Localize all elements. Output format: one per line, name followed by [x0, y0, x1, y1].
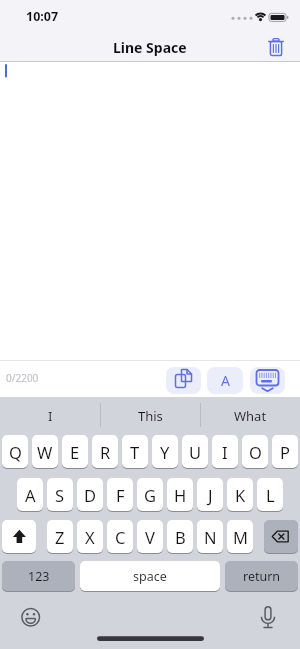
staticText: E: [70, 441, 80, 463]
staticText: W: [37, 441, 53, 463]
button[interactable]: C: [107, 520, 133, 553]
button[interactable]: What: [200, 399, 300, 433]
staticText: L: [266, 484, 275, 506]
staticText: O: [249, 441, 262, 463]
staticText: Z: [55, 526, 65, 548]
button[interactable]: I: [0, 399, 100, 433]
staticText: This: [138, 407, 163, 425]
staticText: S: [55, 484, 65, 506]
button[interactable]: [264, 520, 298, 553]
staticText: N: [204, 526, 217, 548]
staticText: T: [130, 441, 140, 463]
button[interactable]: I: [212, 435, 238, 468]
button[interactable]: [18, 604, 44, 630]
staticText: 123: [28, 568, 50, 585]
staticText: C: [115, 526, 126, 548]
button[interactable]: O: [242, 435, 268, 468]
staticText: B: [175, 526, 186, 548]
staticText: V: [145, 526, 155, 548]
button[interactable]: Y: [152, 435, 178, 468]
button[interactable]: G: [137, 478, 163, 511]
button[interactable]: Z: [47, 520, 73, 553]
staticText: F: [116, 484, 125, 506]
button[interactable]: U: [182, 435, 208, 468]
button[interactable]: Q: [2, 435, 28, 468]
staticText: Line Space: [113, 38, 187, 57]
button[interactable]: J: [197, 478, 223, 511]
button[interactable]: K: [227, 478, 253, 511]
button[interactable]: A: [207, 367, 243, 394]
staticText: P: [280, 441, 290, 463]
staticText: Q: [9, 441, 22, 463]
button[interactable]: T: [122, 435, 148, 468]
button[interactable]: B: [167, 520, 193, 553]
button[interactable]: D: [77, 478, 103, 511]
button[interactable]: [166, 367, 201, 394]
staticText: return: [243, 568, 281, 585]
button[interactable]: R: [92, 435, 118, 468]
button[interactable]: [250, 367, 285, 394]
staticText: A: [25, 484, 36, 506]
staticText: J: [208, 484, 213, 506]
staticText: X: [85, 526, 95, 548]
staticText: 10:07: [26, 8, 59, 25]
staticText: 0/2200: [6, 371, 39, 385]
button[interactable]: P: [272, 435, 298, 468]
button[interactable]: space: [80, 561, 220, 591]
staticText: H: [174, 484, 187, 506]
button[interactable]: [2, 520, 36, 553]
staticText: U: [189, 441, 202, 463]
staticText: I: [48, 407, 53, 425]
button[interactable]: V: [137, 520, 163, 553]
button[interactable]: N: [197, 520, 223, 553]
staticText: M: [233, 526, 248, 548]
staticText: R: [100, 441, 111, 463]
button[interactable]: 123: [2, 561, 75, 591]
button[interactable]: H: [167, 478, 193, 511]
button[interactable]: S: [47, 478, 73, 511]
button[interactable]: E: [62, 435, 88, 468]
button[interactable]: W: [32, 435, 58, 468]
staticText: I: [222, 441, 228, 463]
button[interactable]: [262, 33, 290, 61]
staticText: D: [84, 484, 97, 506]
staticText: space: [133, 568, 167, 585]
staticText: K: [235, 484, 246, 506]
staticText: G: [144, 484, 157, 506]
button[interactable]: F: [107, 478, 133, 511]
button[interactable]: L: [257, 478, 283, 511]
staticText: What: [234, 407, 267, 425]
button[interactable]: This: [100, 399, 200, 433]
button[interactable]: X: [77, 520, 103, 553]
staticText: Y: [160, 441, 170, 463]
button[interactable]: [255, 604, 281, 630]
button[interactable]: A: [17, 478, 43, 511]
button[interactable]: return: [225, 561, 298, 591]
staticText: A: [221, 371, 230, 390]
button[interactable]: M: [227, 520, 253, 553]
